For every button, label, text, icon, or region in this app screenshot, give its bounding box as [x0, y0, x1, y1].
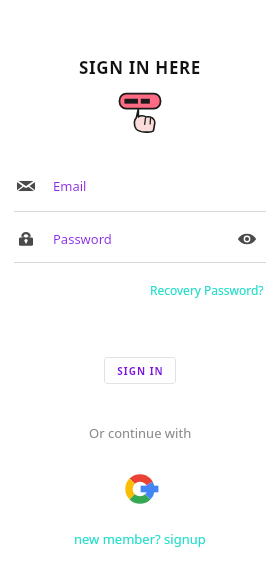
button[interactable]: SIGN IN	[104, 357, 176, 384]
button[interactable]: Recovery Password?	[148, 280, 266, 300]
button[interactable]: Show password	[234, 226, 260, 252]
button[interactable]: new member? signup	[70, 528, 210, 550]
staticText: SIGN IN	[117, 364, 164, 378]
button[interactable]: Continue with Google	[124, 473, 156, 505]
button[interactable]: Email	[0, 173, 280, 199]
staticText: Or continue with	[89, 424, 192, 442]
button[interactable]: Password	[0, 226, 280, 252]
staticText: Password	[53, 230, 112, 248]
button[interactable]: Sign up	[115, 91, 165, 136]
staticText: Recovery Password?	[150, 282, 264, 298]
staticText: SIGN IN HERE	[79, 56, 201, 79]
staticText: new member? signup	[74, 530, 206, 548]
staticText: Email	[53, 177, 87, 195]
